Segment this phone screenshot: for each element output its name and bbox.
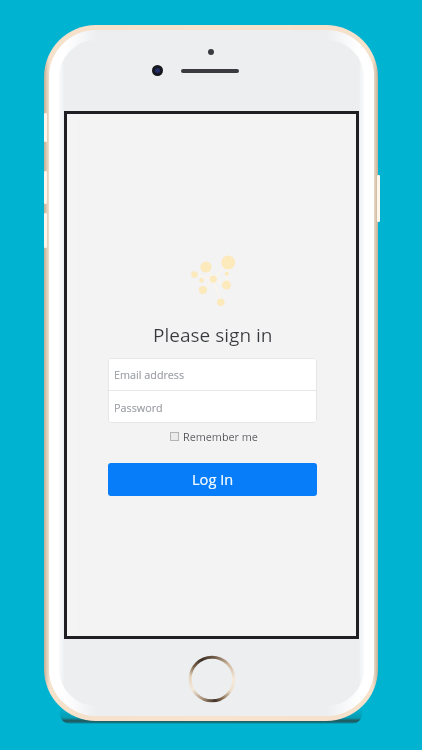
button[interactable]: Log In: [108, 463, 317, 496]
button[interactable]: Password: [108, 391, 317, 423]
staticText: Remember me: [183, 429, 258, 444]
staticText: Email address: [114, 367, 185, 382]
staticText: Password: [114, 400, 163, 415]
staticText: Log In: [192, 469, 234, 489]
button[interactable]: Email address: [108, 358, 317, 390]
button[interactable]: Remember me: [170, 429, 258, 444]
staticText: Please sign in: [153, 322, 273, 348]
button[interactable]: Home: [188, 655, 236, 703]
